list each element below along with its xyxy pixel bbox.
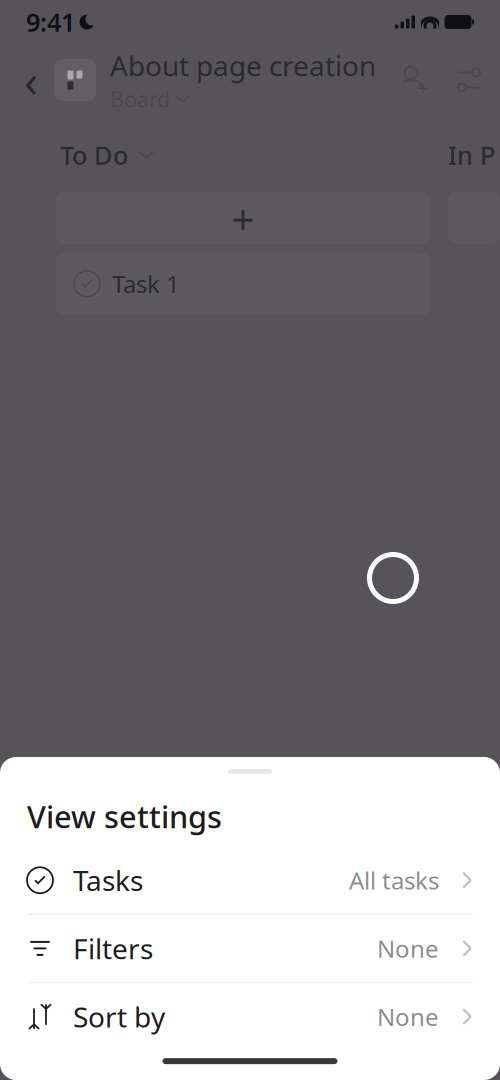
staticText: 9:41 xyxy=(26,5,75,39)
button[interactable]: Add member xyxy=(396,63,430,97)
button[interactable]: To Do xyxy=(60,138,154,172)
button[interactable]: Filters xyxy=(0,915,500,982)
staticText: Sort by xyxy=(73,998,165,1035)
staticText: + xyxy=(231,192,254,245)
button[interactable]: Add card xyxy=(56,192,430,245)
staticText: Board xyxy=(110,85,170,113)
staticText: + xyxy=(417,74,428,100)
staticText: Task 1 xyxy=(112,268,180,300)
staticText: View settings xyxy=(27,796,222,837)
button[interactable]: View settings xyxy=(452,63,486,97)
staticText: About page creation xyxy=(110,47,376,84)
button[interactable]: Back xyxy=(14,58,48,102)
staticText: None xyxy=(377,932,439,964)
staticText: In P xyxy=(448,138,495,172)
staticText: Filters xyxy=(73,930,153,967)
staticText: ‹ xyxy=(24,50,38,110)
button[interactable]: Board xyxy=(110,85,190,113)
staticText: Tasks xyxy=(73,862,143,899)
button[interactable]: Sort by xyxy=(0,983,500,1050)
staticText: To Do xyxy=(60,138,128,172)
button[interactable]: Task 1 xyxy=(56,253,430,315)
button[interactable]: Tasks xyxy=(0,847,500,914)
staticText: None xyxy=(377,1001,439,1033)
staticText: All tasks xyxy=(349,864,439,896)
